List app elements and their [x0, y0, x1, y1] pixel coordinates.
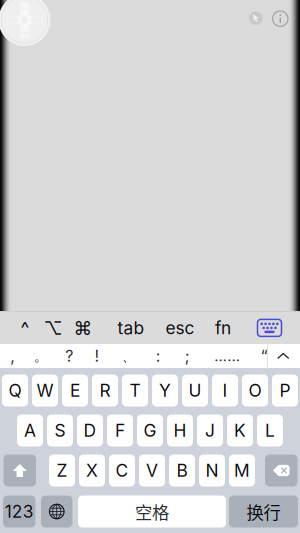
button[interactable]: P: [272, 374, 298, 406]
button[interactable]: I: [212, 374, 238, 406]
button[interactable]: C: [109, 454, 135, 486]
staticText: ;: [185, 346, 190, 366]
staticText: ⌥: [43, 317, 62, 339]
button[interactable]: ^: [8, 312, 42, 344]
staticText: W: [36, 380, 53, 401]
button[interactable]: 。: [28, 344, 54, 368]
button[interactable]: M: [229, 454, 255, 486]
staticText: 。: [34, 347, 49, 365]
button[interactable]: Q: [2, 374, 28, 406]
staticText: F: [115, 420, 125, 441]
staticText: Q: [8, 380, 21, 401]
button[interactable]: A: [17, 414, 43, 446]
button[interactable]: fn: [206, 312, 240, 344]
staticText: :: [156, 346, 161, 366]
staticText: A: [24, 420, 36, 441]
staticText: T: [129, 380, 140, 401]
button[interactable]: R: [92, 374, 118, 406]
button[interactable]: G: [137, 414, 163, 446]
button[interactable]: ⌘: [66, 312, 100, 344]
staticText: 123: [5, 501, 34, 522]
staticText: ^: [20, 317, 29, 339]
button[interactable]: Z: [49, 454, 75, 486]
button[interactable]: N: [199, 454, 225, 486]
button[interactable]: Numbers and symbols: [3, 495, 35, 527]
staticText: L: [265, 420, 275, 441]
button[interactable]: H: [167, 414, 193, 446]
staticText: I: [222, 380, 227, 401]
button[interactable]: D: [77, 414, 103, 446]
staticText: Y: [159, 380, 171, 401]
staticText: C: [115, 460, 128, 481]
staticText: Z: [56, 460, 67, 481]
staticText: 、: [122, 347, 137, 365]
button[interactable]: S: [47, 414, 73, 446]
staticText: R: [99, 380, 110, 401]
staticText: ……: [214, 347, 240, 365]
button[interactable]: ,: [0, 344, 26, 368]
button[interactable]: ;: [174, 344, 200, 368]
staticText: !: [94, 346, 99, 366]
staticText: tab: [117, 317, 144, 338]
button[interactable]: 、: [116, 344, 142, 368]
button[interactable]: :: [145, 344, 171, 368]
button[interactable]: L: [257, 414, 283, 446]
staticText: ,: [10, 346, 15, 366]
button[interactable]: Next keyboard: [41, 495, 72, 527]
staticText: S: [54, 420, 65, 441]
button[interactable]: Pointer: [249, 11, 262, 25]
button[interactable]: “: [251, 344, 277, 368]
button[interactable]: T: [122, 374, 148, 406]
button[interactable]: Collapse: [267, 344, 299, 368]
button[interactable]: B: [169, 454, 195, 486]
staticText: fn: [215, 317, 231, 338]
staticText: 换行: [246, 499, 280, 524]
button[interactable]: Hide keyboard: [249, 312, 289, 344]
button[interactable]: esc: [163, 312, 197, 344]
button[interactable]: F: [107, 414, 133, 446]
button[interactable]: Delete: [265, 454, 297, 486]
button[interactable]: W: [32, 374, 58, 406]
button[interactable]: ?: [56, 344, 82, 368]
button[interactable]: U: [182, 374, 208, 406]
staticText: esc: [165, 317, 194, 338]
staticText: E: [70, 380, 80, 401]
staticText: B: [176, 460, 187, 481]
button[interactable]: ……: [214, 344, 240, 368]
button[interactable]: X: [79, 454, 105, 486]
button[interactable]: ⌥: [36, 312, 70, 344]
staticText: J: [205, 420, 215, 441]
button[interactable]: !: [84, 344, 110, 368]
button[interactable]: J: [197, 414, 223, 446]
staticText: N: [205, 460, 218, 481]
button[interactable]: Info: [273, 11, 288, 26]
staticText: X: [86, 460, 98, 481]
button[interactable]: Y: [152, 374, 178, 406]
staticText: P: [279, 380, 290, 401]
button[interactable]: 空格: [78, 495, 226, 527]
button[interactable]: Shift: [3, 454, 36, 486]
staticText: K: [234, 420, 246, 441]
staticText: ⌘: [73, 317, 92, 339]
button[interactable]: tab: [114, 312, 148, 344]
staticText: M: [234, 460, 250, 481]
staticText: G: [143, 420, 156, 441]
button[interactable]: E: [62, 374, 88, 406]
staticText: D: [83, 420, 96, 441]
staticText: H: [173, 420, 186, 441]
staticText: “: [260, 346, 267, 366]
staticText: 空格: [135, 499, 169, 524]
button[interactable]: V: [139, 454, 165, 486]
button[interactable]: 换行: [229, 495, 298, 527]
staticText: O: [248, 380, 261, 401]
staticText: ?: [65, 346, 73, 366]
button[interactable]: K: [227, 414, 253, 446]
staticText: U: [188, 380, 201, 401]
staticText: V: [146, 460, 158, 481]
button[interactable]: O: [242, 374, 268, 406]
